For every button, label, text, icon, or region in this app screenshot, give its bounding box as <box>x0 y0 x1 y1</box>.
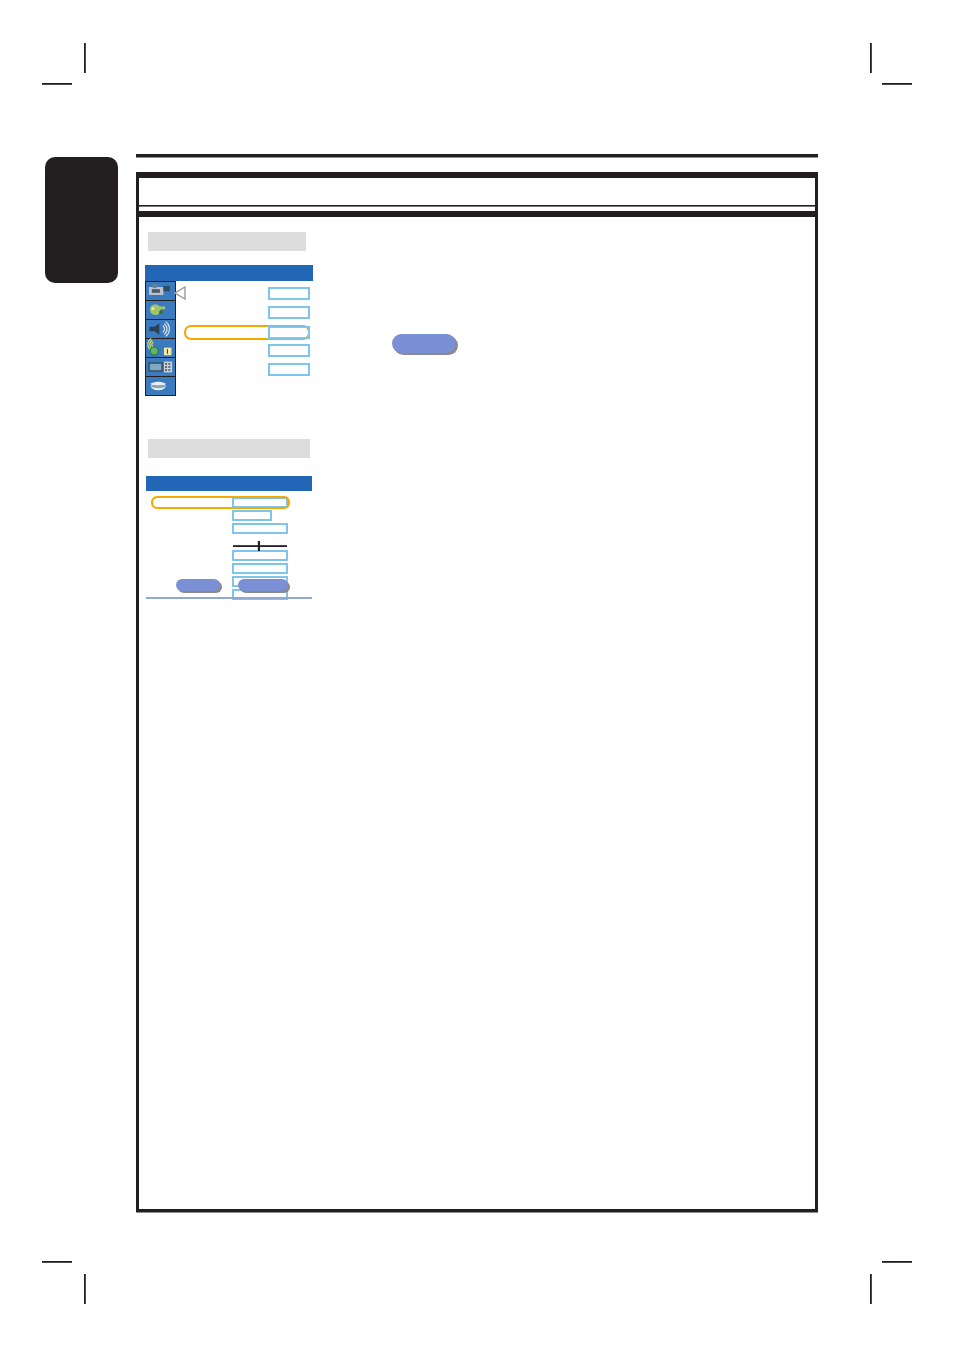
button[interactable]: Selected setting row <box>151 496 290 509</box>
button[interactable]: Value field <box>232 497 288 508</box>
button[interactable]: Value field <box>232 550 288 561</box>
button[interactable]: Chapter tab <box>45 157 118 283</box>
button[interactable]: Display settings <box>146 358 175 376</box>
button[interactable]: Value field <box>232 589 288 600</box>
button[interactable]: Selected menu row <box>184 325 310 340</box>
button[interactable]: Sound settings <box>146 320 175 338</box>
button[interactable]: Value field <box>268 306 310 319</box>
button[interactable]: Button <box>238 579 290 593</box>
button[interactable]: Value field <box>232 510 272 521</box>
button[interactable]: Button <box>176 579 222 593</box>
button[interactable]: Value field <box>232 576 288 587</box>
button[interactable]: Value field <box>232 563 288 574</box>
button[interactable]: Value field <box>268 363 310 376</box>
button[interactable]: Button <box>392 334 458 355</box>
button[interactable]: Timer settings <box>146 339 175 357</box>
button[interactable]: Disc settings <box>146 377 175 395</box>
button[interactable]: Recording settings <box>146 282 175 300</box>
button[interactable]: Value field <box>268 287 310 300</box>
button[interactable]: Value field <box>268 344 310 357</box>
button[interactable]: Value field <box>232 523 288 534</box>
button[interactable]: Picture settings <box>146 301 175 319</box>
